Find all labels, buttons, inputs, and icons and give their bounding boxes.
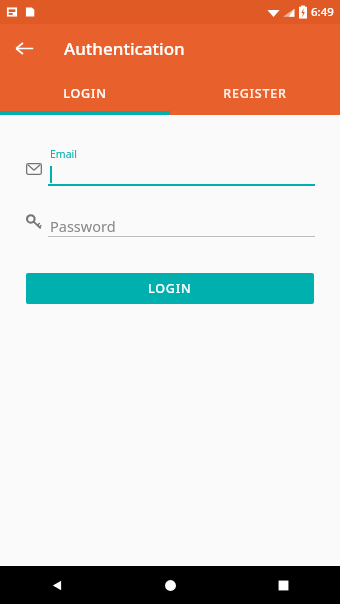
- staticText: LOGIN: [63, 85, 107, 102]
- button[interactable]: Recent apps: [227, 566, 340, 604]
- button[interactable]: Home: [114, 566, 227, 604]
- button[interactable]: Back: [0, 566, 114, 604]
- staticText: Email: [50, 147, 77, 161]
- staticText: Password: [50, 216, 116, 236]
- button[interactable]: LOGIN: [0, 72, 170, 115]
- button[interactable]: LOGIN: [26, 273, 314, 304]
- button[interactable]: Password: [26, 214, 315, 237]
- button[interactable]: Back: [8, 32, 40, 64]
- button[interactable]: REGISTER: [170, 72, 340, 115]
- staticText: REGISTER: [223, 85, 287, 102]
- button[interactable]: Email: [26, 147, 315, 186]
- staticText: Authentication: [64, 37, 185, 60]
- staticText: 6:49: [311, 4, 334, 20]
- staticText: LOGIN: [148, 280, 192, 297]
